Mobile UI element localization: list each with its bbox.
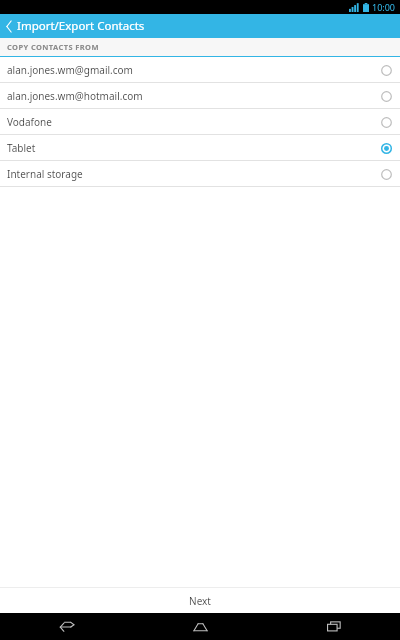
button[interactable]: Recent apps — [267, 613, 400, 640]
button[interactable]: Back — [0, 613, 134, 640]
staticText: Tablet — [7, 141, 378, 155]
button[interactable]: alan.jones.wm@hotmail.com — [0, 83, 400, 108]
button[interactable]: Next — [0, 588, 400, 613]
button[interactable]: Import/Export Contacts — [0, 14, 400, 38]
staticText: Vodafone — [7, 115, 378, 129]
button[interactable]: Home — [134, 613, 267, 640]
staticText: COPY CONTACTS FROM — [7, 42, 99, 52]
staticText: 10:00 — [372, 1, 396, 13]
button[interactable]: Vodafone — [0, 109, 400, 134]
staticText: alan.jones.wm@hotmail.com — [7, 89, 378, 103]
staticText: Next — [189, 594, 211, 608]
staticText: alan.jones.wm@gmail.com — [7, 63, 378, 77]
staticText: Internal storage — [7, 167, 378, 181]
button[interactable]: Internal storage — [0, 161, 400, 186]
staticText: Import/Export Contacts — [17, 18, 145, 34]
button[interactable]: Tablet — [0, 135, 400, 160]
button[interactable]: alan.jones.wm@gmail.com — [0, 57, 400, 82]
